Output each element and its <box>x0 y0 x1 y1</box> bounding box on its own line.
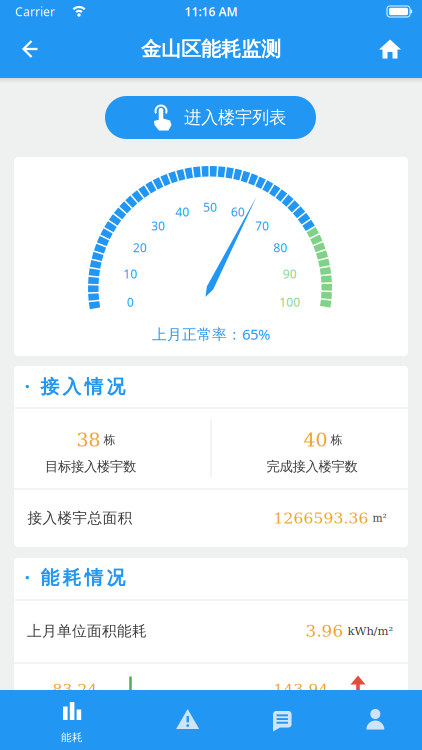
staticText: 80 <box>273 239 287 255</box>
staticText: 能耗 <box>61 731 83 744</box>
staticText: Carrier <box>15 3 55 19</box>
staticText: 50 <box>203 199 217 215</box>
staticText: 100 <box>279 294 300 310</box>
button[interactable]: 消息 <box>234 690 328 750</box>
staticText: 完成接入楼宇数 <box>266 458 357 475</box>
staticText: 目标接入楼宇数 <box>45 458 136 475</box>
staticText: 60 <box>231 204 245 220</box>
staticText: m² <box>372 512 386 524</box>
staticText: 1266593.36 <box>273 509 368 527</box>
button[interactable]: 返回 <box>8 27 52 71</box>
staticText: 20 <box>133 239 147 255</box>
staticText: 40 <box>303 429 327 451</box>
staticText: 38 <box>76 429 100 451</box>
button[interactable]: 告警 <box>141 690 234 750</box>
button[interactable]: 首页 <box>368 27 412 71</box>
staticText: 栋 <box>103 433 115 447</box>
staticText: · 接入情况 <box>24 374 125 398</box>
staticText: · 能耗情况 <box>24 565 125 589</box>
button[interactable]: 能耗 <box>0 690 141 750</box>
staticText: 30 <box>151 218 165 234</box>
staticText: 栋 <box>330 433 342 447</box>
button[interactable]: 我的 <box>328 690 422 750</box>
button[interactable]: 进入楼宇列表 <box>105 96 316 139</box>
staticText: 83.24 <box>52 680 97 698</box>
staticText: 进入楼宇列表 <box>184 107 286 128</box>
staticText: 上月单位面积能耗 <box>27 622 147 640</box>
staticText: 金山区能耗监测 <box>141 37 281 61</box>
staticText: 0 <box>127 294 134 310</box>
staticText: 143.94 <box>273 680 328 698</box>
staticText: 11:16 AM <box>184 3 237 19</box>
staticText: 上月正常率：65% <box>152 324 270 344</box>
staticText: 70 <box>255 218 269 234</box>
staticText: 接入楼宇总面积 <box>27 509 132 527</box>
staticText: 40 <box>175 204 189 220</box>
staticText: 10 <box>123 266 137 282</box>
staticText: 3.96 <box>305 621 343 641</box>
staticText: 90 <box>283 266 297 282</box>
staticText: kWh/m² <box>347 624 393 638</box>
